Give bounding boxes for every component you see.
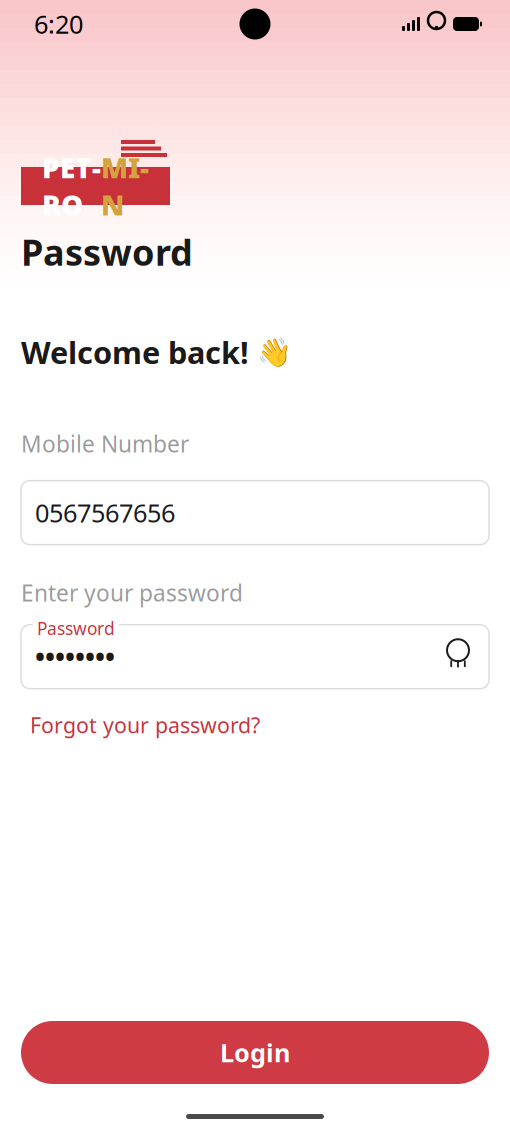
staticText: 👋	[257, 336, 292, 368]
staticText: Enter your password	[21, 578, 243, 608]
staticText: ••••••••	[35, 639, 115, 674]
staticText: MIN	[101, 149, 149, 223]
button[interactable]: Show password	[437, 636, 479, 678]
staticText: Password	[37, 617, 115, 640]
button[interactable]: Login	[21, 1021, 489, 1084]
staticText: PETRO	[42, 149, 101, 223]
button[interactable]: Forgot your password?	[21, 705, 260, 745]
staticText: Forgot your password?	[30, 711, 260, 739]
staticText: 0567567656	[35, 496, 175, 529]
staticText: Password	[21, 228, 193, 276]
staticText: Mobile Number	[21, 428, 189, 459]
staticText: Login	[220, 1036, 290, 1069]
staticText: 6:20	[34, 7, 83, 41]
staticText: Welcome back!	[21, 332, 249, 372]
